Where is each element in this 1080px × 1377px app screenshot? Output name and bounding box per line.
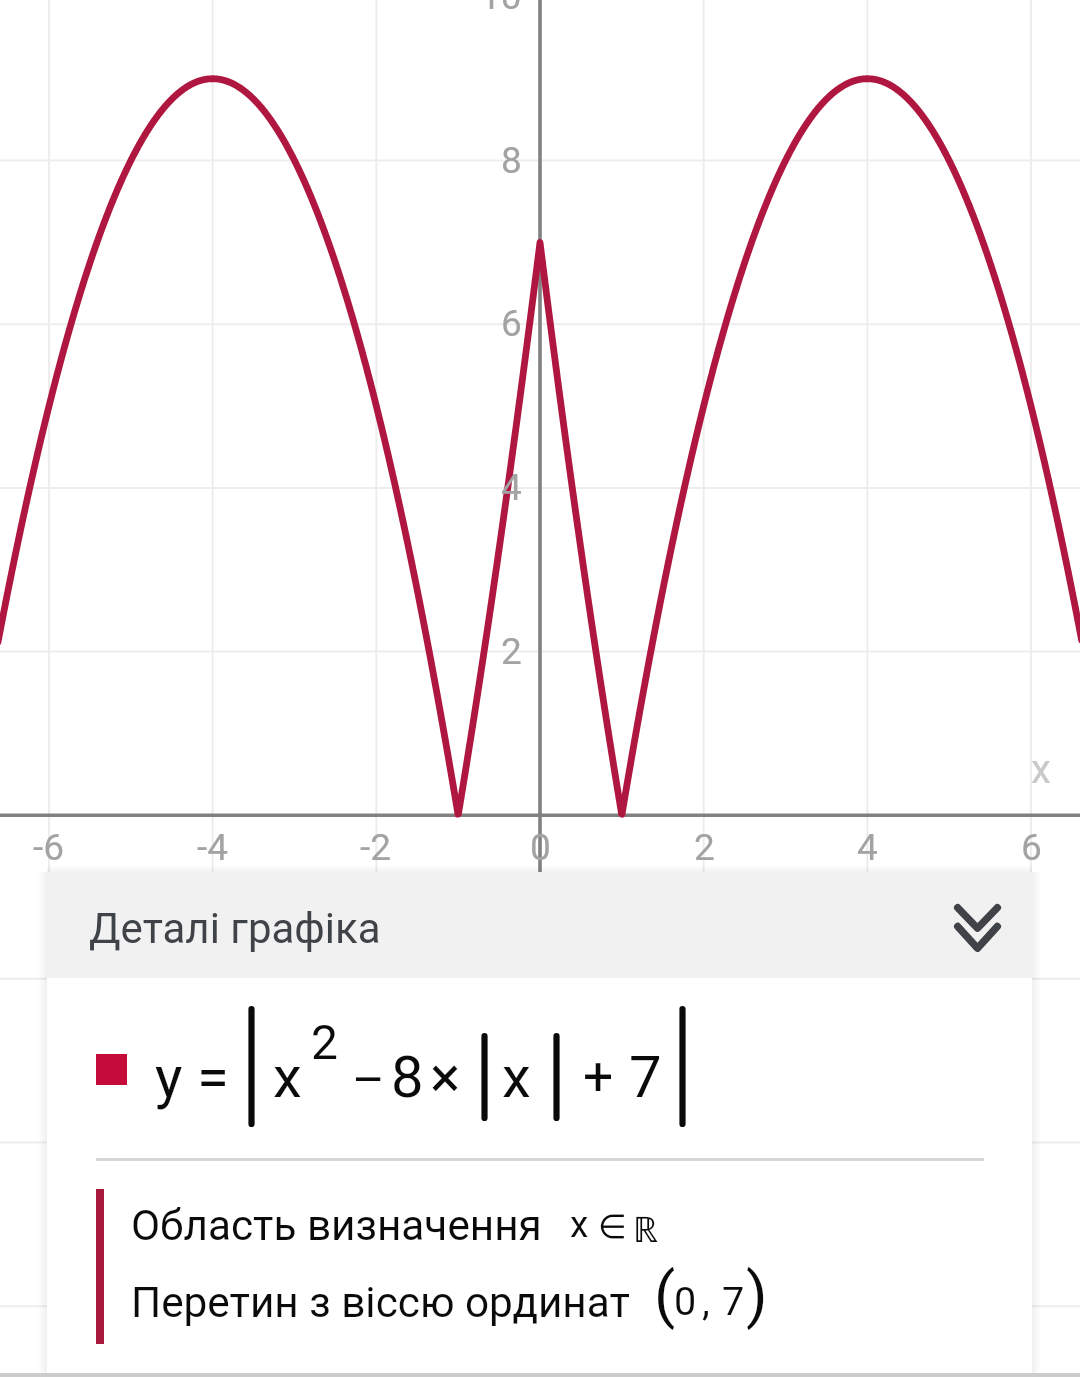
staticText: -2 [360,826,392,869]
staticText: -4 [197,826,229,869]
staticText: Деталі графіка [89,904,381,953]
staticText: ( [654,1258,676,1331]
staticText: ∈ [598,1207,627,1245]
staticText: – [352,1051,385,1110]
staticText: ) [746,1258,768,1331]
staticText: 2 [694,826,715,869]
staticText: 2 [311,1014,338,1070]
staticText: ℝ [633,1204,659,1252]
staticText: = [197,1043,229,1111]
staticText: 6 [501,302,522,345]
staticText: 6 [1021,826,1042,869]
staticText: 2 [501,630,522,673]
staticText: Область визначення [131,1201,542,1251]
button[interactable] [110,1267,984,1345]
staticText: 7 [722,1278,745,1324]
staticText: 4 [501,466,522,509]
staticText: , [702,1278,710,1324]
staticText: 0 [530,826,551,869]
staticText: Перетин з віссю ординат [131,1278,630,1328]
staticText: 8 [501,139,522,182]
staticText: y [155,1043,183,1111]
staticText: 10 [480,0,522,18]
button[interactable] [47,978,1032,1158]
staticText: x [570,1203,589,1246]
button[interactable]: Collapse details [948,883,1032,967]
staticText: + [583,1045,614,1108]
staticText: -6 [33,826,65,869]
button[interactable] [110,1189,984,1267]
button[interactable]: Деталі графіка [47,872,1032,978]
staticText: 0 [674,1278,697,1324]
staticText: 7 [629,1043,662,1111]
staticText: 8 [391,1043,424,1111]
staticText: × [430,1044,461,1111]
staticText: x [273,1043,302,1111]
staticText: x [1031,746,1051,793]
staticText: 4 [857,826,878,869]
staticText: x [502,1043,531,1111]
